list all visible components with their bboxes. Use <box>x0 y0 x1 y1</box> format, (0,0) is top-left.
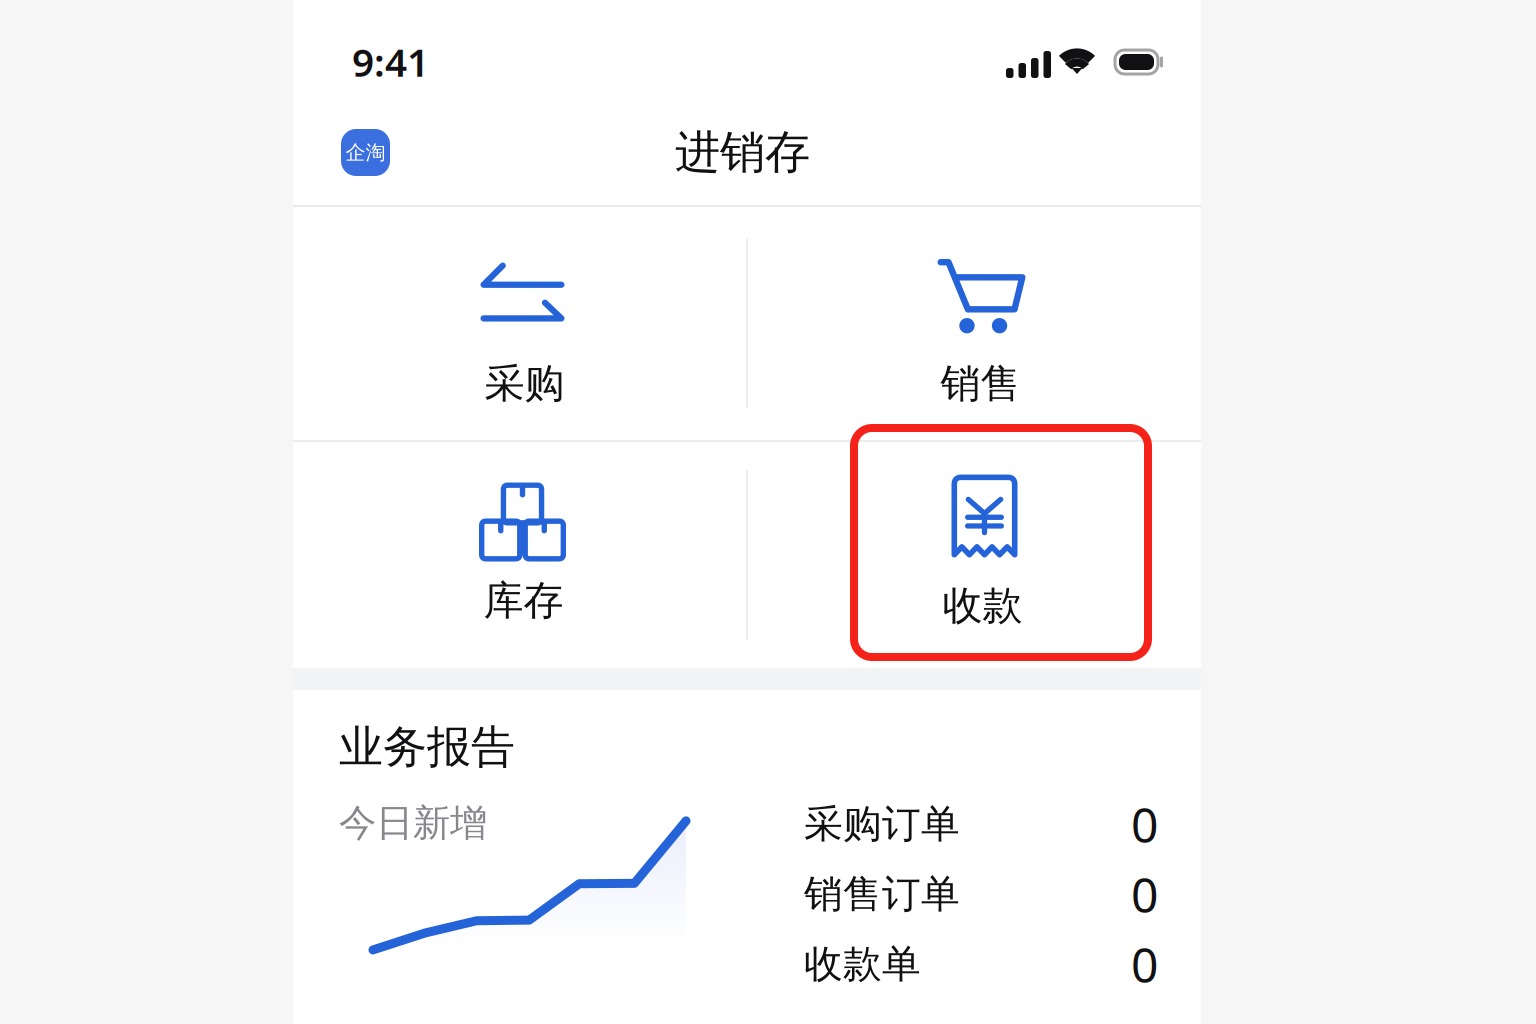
staticText: 库存 <box>483 576 563 625</box>
button[interactable]: 采购 <box>293 207 746 440</box>
staticText: 今日新增 <box>339 800 487 846</box>
staticText: 收款 <box>942 581 1022 630</box>
staticText: 销售 <box>940 359 1020 408</box>
staticText: 采购 <box>484 359 564 408</box>
staticText: 企淘 <box>345 140 385 165</box>
button[interactable]: 收款 <box>748 442 1201 668</box>
button[interactable]: 销售订单 <box>804 859 1158 929</box>
staticText: 业务报告 <box>339 720 515 774</box>
button[interactable]: 库存 <box>293 442 746 668</box>
button[interactable]: 采购订单 <box>804 789 1158 859</box>
staticText: 收款单 <box>804 940 921 988</box>
button[interactable]: 企淘 app <box>341 129 390 176</box>
staticText: 0 <box>1131 932 1158 996</box>
button[interactable]: 收款单 <box>804 929 1158 999</box>
staticText: 9:41 <box>352 36 429 87</box>
button[interactable]: 销售 <box>748 207 1201 440</box>
staticText: 0 <box>1131 862 1158 926</box>
staticText: 进销存 <box>675 125 810 180</box>
staticText: 采购订单 <box>804 800 960 848</box>
staticText: 销售订单 <box>804 870 960 918</box>
staticText: 0 <box>1131 792 1158 856</box>
